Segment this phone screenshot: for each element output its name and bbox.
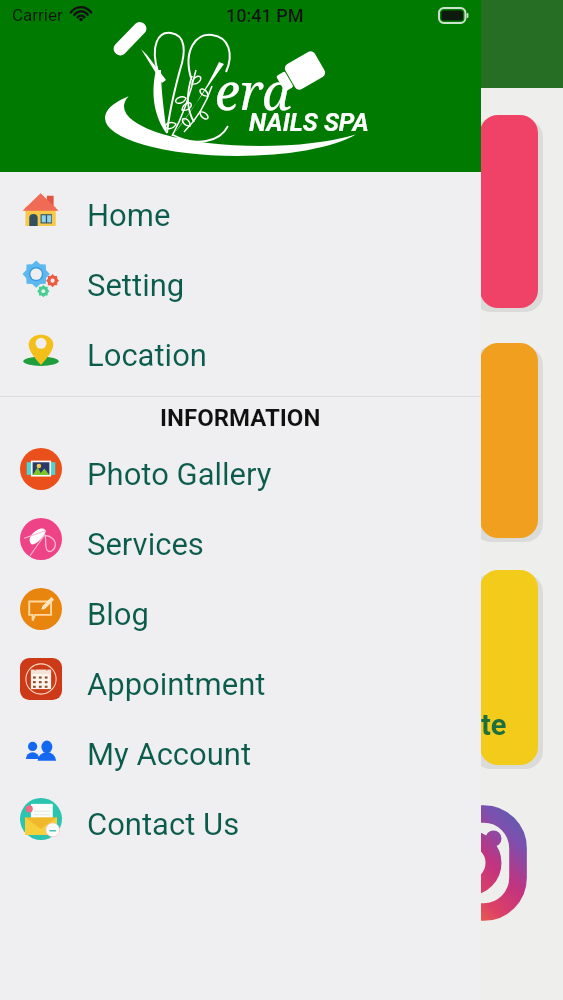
button[interactable]: Appointment	[0, 649, 481, 719]
button[interactable]: Services	[0, 509, 481, 579]
staticText: Appointment	[87, 666, 266, 702]
staticText: Home	[87, 197, 171, 233]
staticText: Photo Gallery	[87, 456, 272, 492]
button[interactable]: My Account	[0, 719, 481, 789]
staticText: My Account	[87, 736, 252, 772]
button[interactable]: Blog	[0, 579, 481, 649]
button[interactable]: Location	[0, 320, 481, 390]
staticText: INFORMATION	[160, 404, 321, 432]
staticText: era	[215, 57, 291, 125]
staticText: Contact Us	[87, 806, 240, 842]
button[interactable]: Contact Us	[0, 789, 481, 859]
staticText: 10:41 PM	[226, 5, 304, 26]
staticText: Services	[87, 526, 204, 562]
button[interactable]: Setting	[0, 250, 481, 320]
staticText: Blog	[87, 596, 149, 632]
staticText: Carrier	[12, 5, 63, 25]
staticText: Setting	[87, 267, 185, 303]
staticText: Location	[87, 337, 207, 373]
staticText: te	[481, 708, 507, 742]
button[interactable]: Home	[0, 180, 481, 250]
staticText: NAILS SPA	[249, 108, 369, 137]
button[interactable]: Photo Gallery	[0, 439, 481, 509]
